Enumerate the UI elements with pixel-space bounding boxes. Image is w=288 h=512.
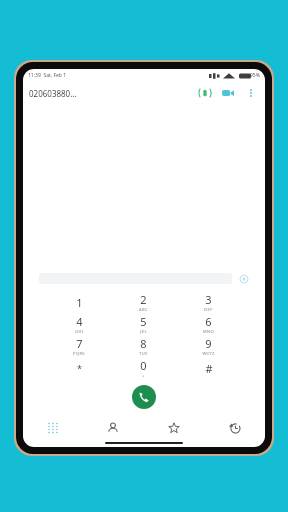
button[interactable]: 3 (176, 291, 241, 313)
staticText: ABC (139, 307, 148, 312)
staticText: 9 (205, 336, 212, 351)
button[interactable]: 1 (47, 291, 111, 313)
staticText: 2 (140, 292, 147, 307)
button[interactable]: Backspace (238, 273, 249, 284)
button[interactable]: * (47, 357, 111, 379)
button[interactable]: Contacts (83, 417, 143, 439)
button[interactable]: 2 (111, 291, 176, 313)
staticText: DEF (204, 307, 213, 312)
button[interactable]: More options (243, 85, 259, 101)
staticText: JKL (140, 329, 147, 334)
staticText: 5 (140, 314, 147, 329)
staticText: 020603880... (29, 88, 77, 99)
staticText: 0 (140, 358, 147, 373)
button[interactable]: 6 (176, 313, 241, 335)
staticText: TUV (139, 351, 148, 356)
staticText: * (77, 362, 82, 374)
button[interactable]: 4 (47, 313, 111, 335)
staticText: 11:39 Sat, Feb 1 (28, 72, 67, 79)
staticText: MNO (203, 329, 214, 334)
button[interactable]: 7 (47, 335, 111, 357)
button[interactable]: # (176, 357, 241, 379)
staticText: 6 (205, 314, 212, 329)
staticText: 4 (76, 314, 83, 329)
staticText: PQRS (73, 351, 85, 356)
button[interactable]: Video call (220, 85, 236, 101)
staticText: # (205, 361, 213, 376)
staticText: 7 (76, 336, 83, 351)
button[interactable]: 0 (111, 357, 176, 379)
staticText: + (142, 373, 145, 378)
button[interactable]: Call signal (197, 85, 213, 101)
button[interactable]: Favorites (143, 417, 204, 439)
button[interactable]: 5 (111, 313, 176, 335)
staticText: 95% (250, 72, 260, 79)
staticText: 8 (140, 336, 147, 351)
button[interactable]: Dialpad (23, 417, 83, 439)
staticText: 3 (205, 292, 212, 307)
staticText: GHI (75, 329, 84, 334)
button[interactable]: 8 (111, 335, 176, 357)
button[interactable]: Call (132, 385, 156, 409)
button[interactable]: Recents (204, 417, 265, 439)
button[interactable]: 9 (176, 335, 241, 357)
staticText: WXYZ (202, 351, 215, 356)
staticText: 1 (76, 295, 83, 310)
